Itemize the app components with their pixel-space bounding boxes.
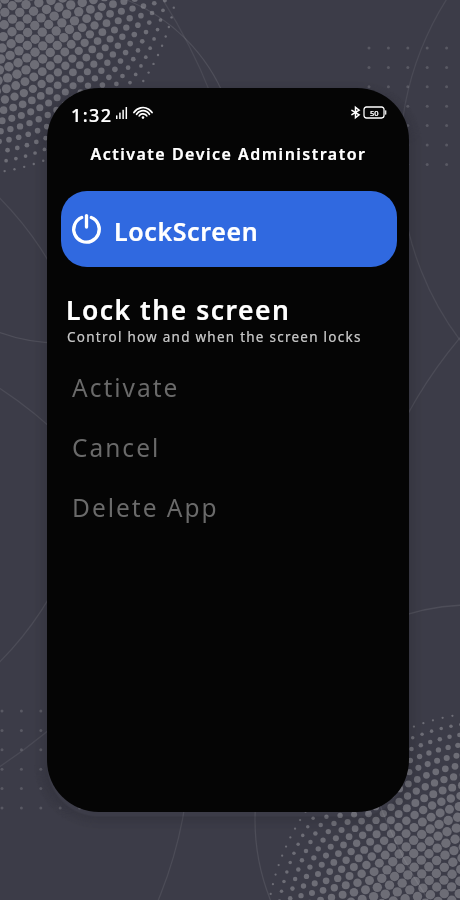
staticText: 50: [370, 108, 379, 118]
staticText: Activate Device Administrator: [90, 143, 367, 165]
staticText: LockScreen: [114, 214, 259, 248]
staticText: Delete App: [72, 491, 219, 524]
button[interactable]: Activate: [47, 363, 409, 409]
staticText: 1:32: [71, 103, 113, 128]
staticText: Activate: [72, 371, 180, 404]
staticText: Control how and when the screen locks: [67, 328, 362, 346]
button[interactable]: Cancel: [47, 423, 409, 469]
button[interactable]: Delete App: [47, 483, 409, 529]
staticText: Cancel: [72, 431, 161, 464]
button[interactable]: LockScreen: [61, 191, 397, 267]
staticText: Lock the screen: [66, 292, 291, 328]
